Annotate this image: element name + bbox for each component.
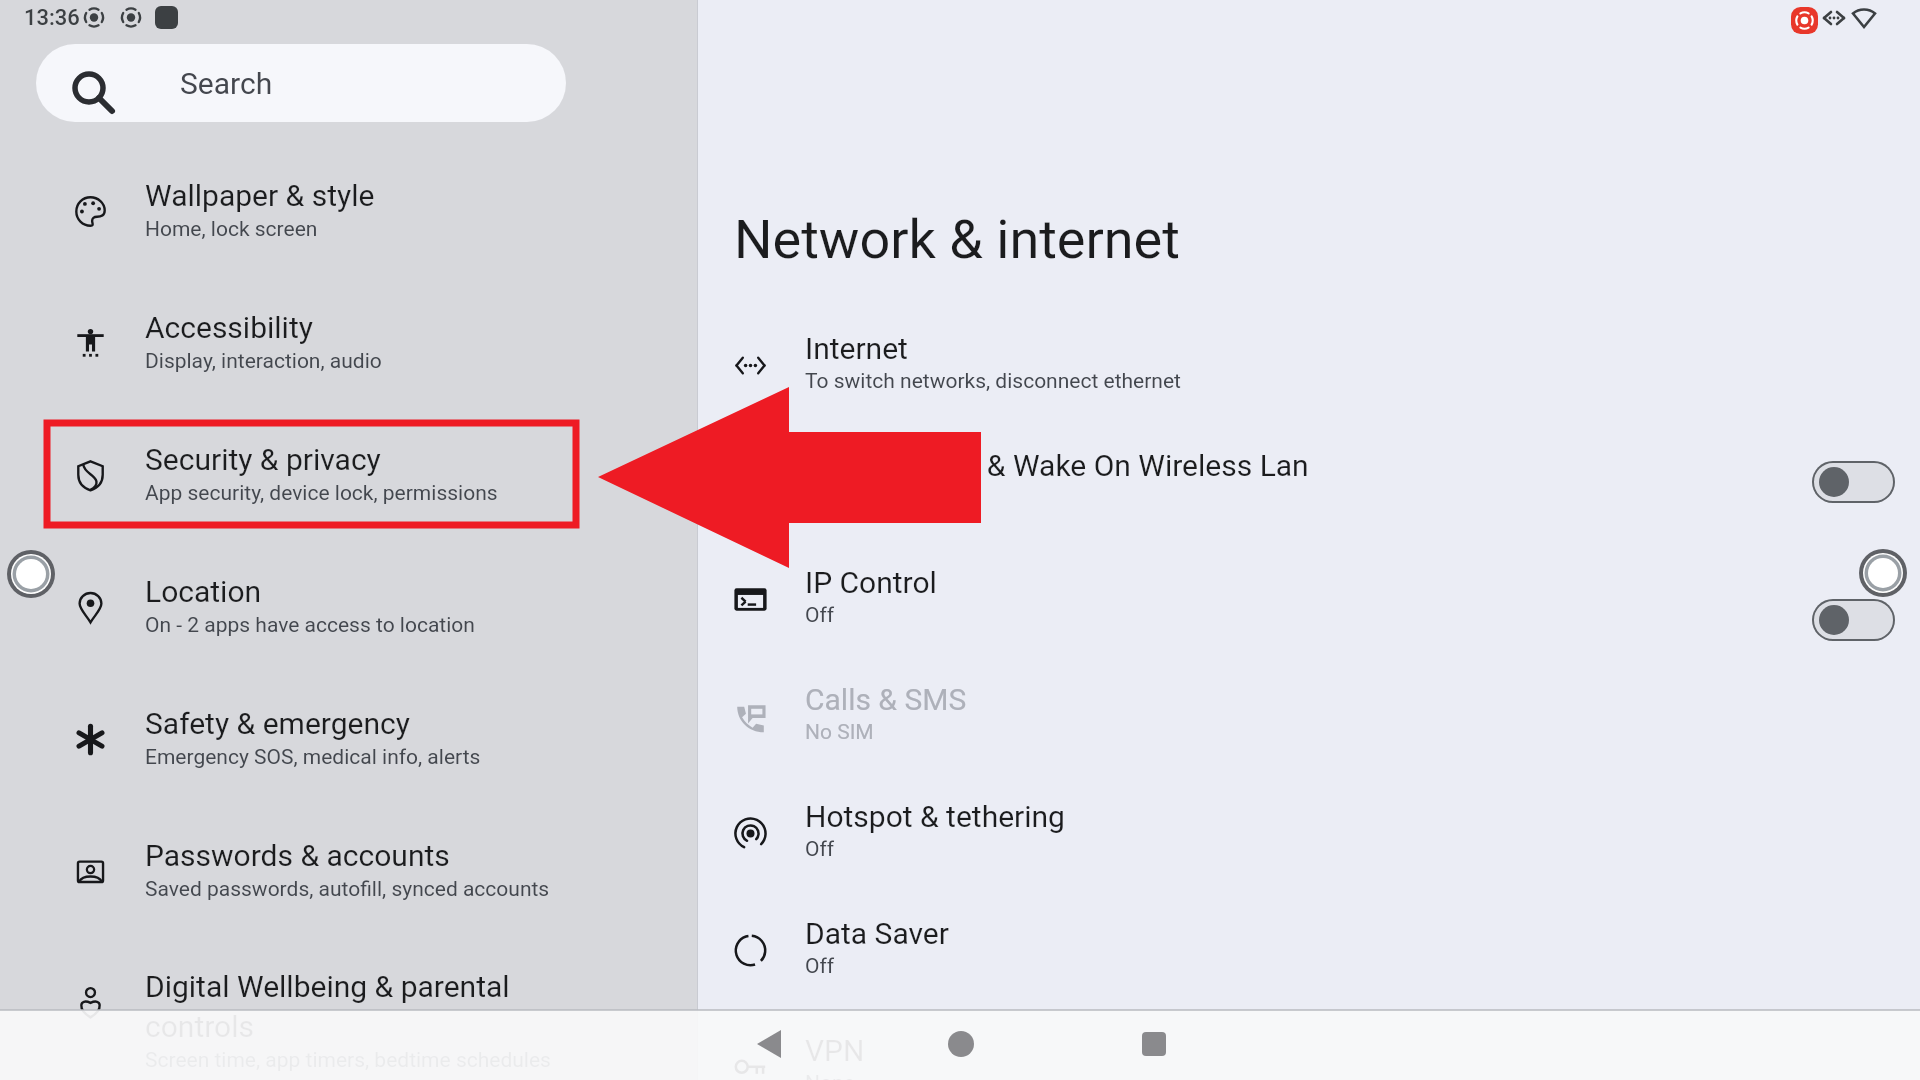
- staticText: Data Saver: [805, 916, 949, 951]
- staticText: Network & internet: [734, 208, 1180, 271]
- button[interactable]: Toggle Ethernet Link & Wake On Wireless …: [1812, 461, 1895, 503]
- button[interactable]: Wallpaper & style: [0, 145, 697, 277]
- staticText: IP Control: [805, 565, 937, 600]
- staticText: Passwords & accounts: [145, 838, 450, 873]
- button[interactable]: Internet: [698, 307, 1920, 424]
- button[interactable]: VPN: [698, 1009, 1920, 1080]
- button[interactable]: Security & privacy: [0, 409, 697, 541]
- button[interactable]: Calls & SMS: [698, 658, 1920, 775]
- button[interactable]: Digital Wellbeing & parental controls: [0, 937, 697, 1069]
- staticText: Search: [180, 66, 273, 101]
- button[interactable]: IP Control: [698, 541, 1920, 658]
- staticText: App security, device lock, permissions: [145, 481, 498, 506]
- button[interactable]: Safety & emergency: [0, 673, 697, 805]
- button[interactable]: Location: [0, 541, 697, 673]
- staticText: Location: [145, 574, 262, 609]
- staticText: Security & privacy: [145, 442, 381, 477]
- staticText: Ethernet Link & Wake On Wireless Lan: [805, 448, 1309, 483]
- staticText: Off: [805, 837, 835, 862]
- staticText: 13:36: [24, 5, 80, 31]
- staticText: Screen time, app timers, bedtime schedul…: [145, 1048, 551, 1073]
- staticText: Calls & SMS: [805, 682, 967, 717]
- staticText: To switch networks, disconnect ethernet: [805, 369, 1181, 394]
- staticText: Home, lock screen: [145, 217, 318, 242]
- staticText: On - 2 apps have access to location: [145, 613, 475, 638]
- button[interactable]: Ethernet Link & Wake On Wireless Lan: [698, 424, 1920, 541]
- staticText: Wallpaper & style: [145, 178, 375, 213]
- staticText: Digital Wellbeing & parental controls: [145, 969, 510, 1044]
- staticText: Off: [805, 603, 835, 628]
- staticText: Hotspot & tethering: [805, 799, 1065, 834]
- button[interactable]: Passwords & accounts: [0, 805, 697, 937]
- staticText: Saved passwords, autofill, synced accoun…: [145, 877, 550, 902]
- staticText: Accessibility: [145, 310, 313, 345]
- staticText: VPN: [805, 1033, 865, 1068]
- staticText: No SIM: [805, 720, 874, 745]
- button[interactable]: Hotspot & tethering: [698, 775, 1920, 892]
- staticText: Display, interaction, audio: [145, 349, 382, 374]
- staticText: Emergency SOS, medical info, alerts: [145, 745, 481, 770]
- staticText: None: [805, 1071, 855, 1080]
- button[interactable]: Data Saver: [698, 892, 1920, 1009]
- staticText: Off: [805, 954, 835, 979]
- staticText: Safety & emergency: [145, 706, 410, 741]
- button[interactable]: Toggle IP Control: [1812, 599, 1895, 641]
- staticText: Internet: [805, 331, 908, 366]
- button[interactable]: Accessibility: [0, 277, 697, 409]
- button[interactable]: Search: [36, 44, 566, 122]
